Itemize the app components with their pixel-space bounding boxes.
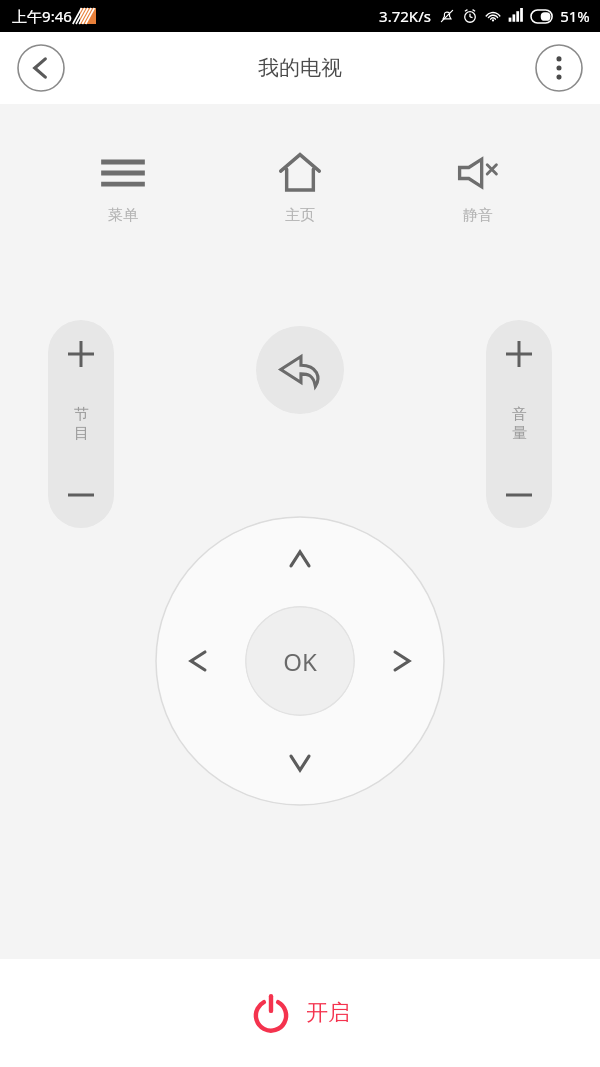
button[interactable]: Left <box>177 638 223 684</box>
button[interactable]: 节目 decrease <box>48 445 114 528</box>
staticText: 静音 <box>463 206 493 225</box>
staticText: 51% <box>560 6 590 26</box>
button[interactable]: Menu <box>68 146 178 229</box>
staticText: 3.72K/s <box>379 6 431 26</box>
staticText: 我的电视 <box>258 55 342 81</box>
button[interactable]: 音量 increase <box>486 320 552 403</box>
staticText: 开启 <box>306 999 350 1027</box>
button[interactable]: Mute <box>423 146 533 229</box>
button[interactable]: Down <box>277 738 323 784</box>
button[interactable]: OK <box>245 606 355 716</box>
button[interactable]: 音量 decrease <box>486 445 552 528</box>
staticText: 量 <box>512 424 527 443</box>
staticText: 目 <box>74 424 89 443</box>
button[interactable]: Back <box>256 326 344 414</box>
staticText: 音 <box>512 405 527 424</box>
staticText: 上午9:46 <box>12 6 72 26</box>
button[interactable]: More options <box>532 41 586 95</box>
button[interactable]: Home <box>245 146 355 229</box>
button[interactable]: Back <box>14 41 68 95</box>
staticText: 主页 <box>285 206 315 225</box>
button[interactable]: Up <box>277 538 323 584</box>
button[interactable]: 开启 <box>234 984 366 1042</box>
button[interactable]: Right <box>377 638 423 684</box>
staticText: 节 <box>74 405 89 424</box>
button[interactable]: 节目 increase <box>48 320 114 403</box>
staticText: OK <box>283 645 317 678</box>
staticText: 菜单 <box>108 206 138 225</box>
